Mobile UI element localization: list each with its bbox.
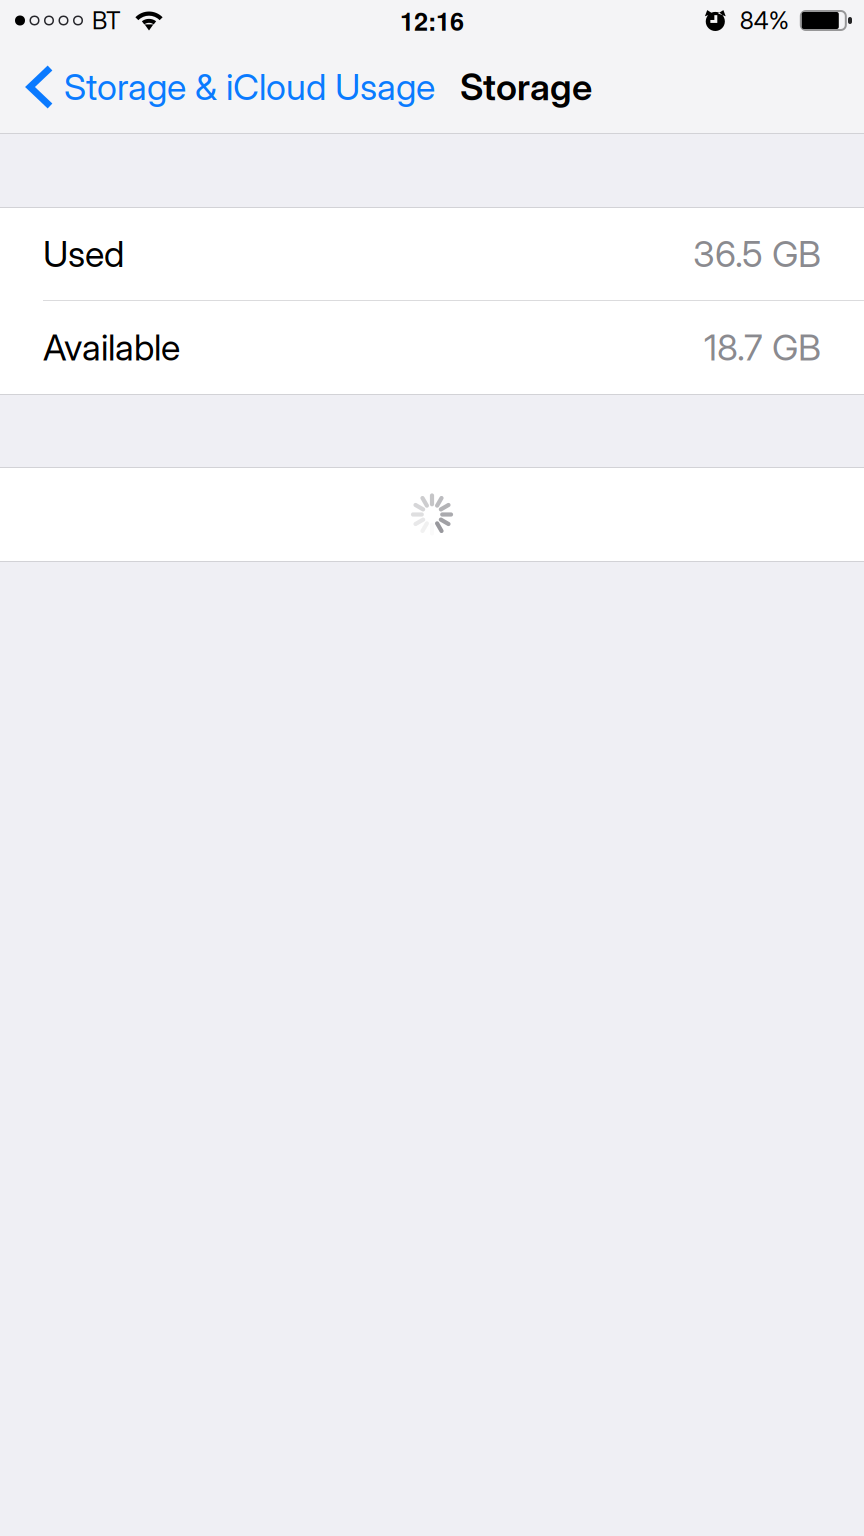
staticText: 36.5 GB <box>693 232 821 276</box>
staticText: Storage <box>460 65 592 109</box>
staticText: Storage & iCloud Usage <box>64 65 435 109</box>
button[interactable]: Storage & iCloud Usage <box>0 41 435 133</box>
button[interactable]: Used <box>0 208 864 300</box>
staticText: Available <box>43 326 180 369</box>
staticText: 12:16 <box>400 2 464 39</box>
staticText: BT <box>92 6 121 35</box>
staticText: Used <box>43 232 124 276</box>
staticText: 84% <box>740 6 789 35</box>
staticText: 18.7 GB <box>704 326 821 369</box>
button[interactable]: Available <box>0 301 864 394</box>
